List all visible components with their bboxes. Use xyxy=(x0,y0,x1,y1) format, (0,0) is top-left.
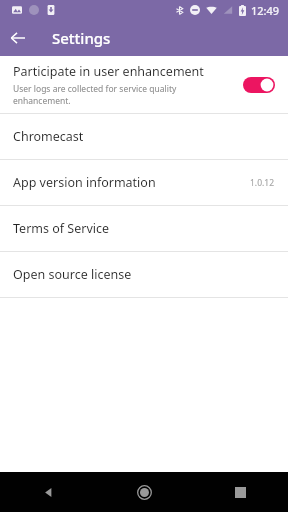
staticText: User logs are collected for service qual… xyxy=(13,83,235,107)
staticText: 12:49 xyxy=(251,3,280,18)
staticText: App version information xyxy=(13,174,250,191)
staticText: Terms of Service xyxy=(13,220,275,237)
button[interactable]: Back xyxy=(24,472,72,512)
staticText: 1.0.12 xyxy=(250,177,275,189)
button[interactable]: Back xyxy=(0,20,36,56)
button[interactable]: App version information xyxy=(0,160,288,205)
button[interactable]: Participate in user enhancement toggle xyxy=(243,75,275,95)
button[interactable]: Home xyxy=(120,472,168,512)
button[interactable]: Recents xyxy=(216,472,264,512)
staticText: Open source license xyxy=(13,266,275,283)
staticText: Participate in user enhancement xyxy=(13,63,204,80)
staticText: Chromecast xyxy=(13,128,275,145)
staticText: Settings xyxy=(52,28,111,48)
button[interactable]: Terms of Service xyxy=(0,206,288,251)
button[interactable]: Chromecast xyxy=(0,114,288,159)
button[interactable]: Participate in user enhancement xyxy=(0,56,288,113)
button[interactable]: Open source license xyxy=(0,252,288,297)
